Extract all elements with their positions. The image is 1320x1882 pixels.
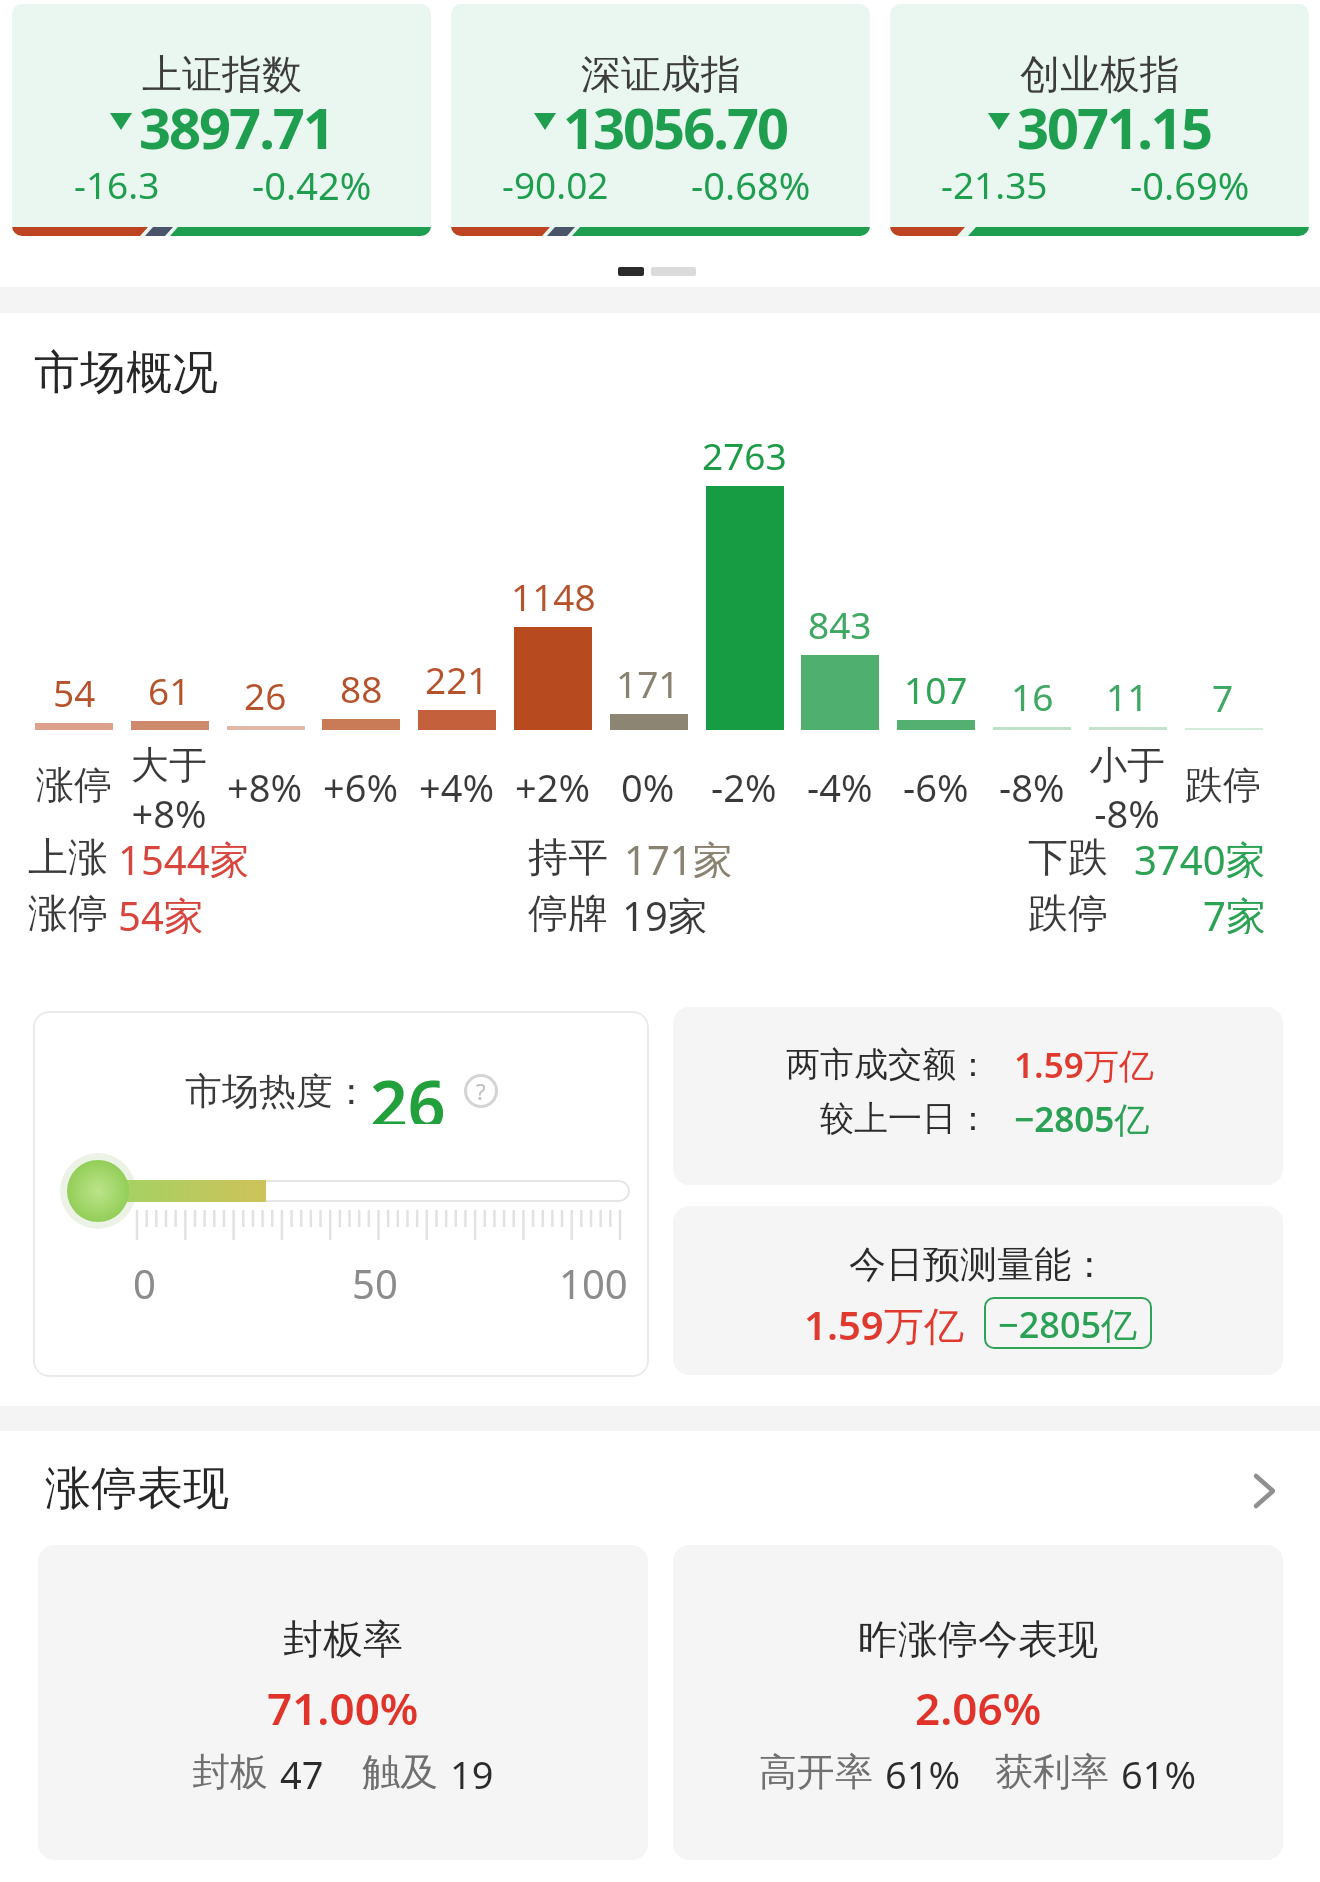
staticText: 市场概况 [34, 344, 218, 398]
staticText: 50 [352, 1256, 398, 1302]
staticText: +2% [515, 761, 591, 805]
staticText: -6% [903, 761, 969, 805]
button[interactable] [1248, 1470, 1284, 1512]
staticText: -4% [807, 761, 873, 805]
staticText: 获利率 [995, 1748, 1109, 1796]
staticText: 54 [53, 667, 96, 715]
staticText: 19家 [622, 888, 708, 934]
staticText: 跌停 [1185, 761, 1261, 805]
staticText: 深证成指 [581, 49, 741, 99]
staticText: 7 [1212, 672, 1234, 720]
staticText: 3897.71 [139, 89, 333, 153]
staticText: 0 [133, 1256, 156, 1302]
staticText: 1544家 [118, 832, 250, 878]
staticText: +8% [227, 761, 303, 805]
staticText: 221 [425, 654, 489, 702]
staticText: 54家 [118, 888, 204, 934]
staticText: 封板 [192, 1748, 268, 1796]
staticText: 封板率 [283, 1614, 403, 1662]
button[interactable]: 上证指数 [12, 4, 431, 236]
button[interactable] [33, 1011, 649, 1377]
button[interactable]: 深证成指 [451, 4, 870, 236]
staticText: 两市成交额： [786, 1043, 990, 1086]
staticText: 11 [1106, 671, 1149, 719]
staticText: 61% [1121, 1748, 1197, 1796]
staticText: 创业板指 [1020, 49, 1180, 99]
staticText: 19 [450, 1748, 494, 1796]
staticText: +6% [323, 761, 399, 805]
staticText: 88 [340, 663, 383, 711]
staticText: 1.59万亿 [1014, 1041, 1154, 1087]
staticText: 下跌 [1028, 832, 1108, 878]
staticText: -21.35 [941, 159, 1048, 207]
staticText: 涨停 [28, 888, 108, 934]
staticText: 26 [370, 1058, 446, 1124]
staticText: 3071.15 [1017, 89, 1211, 153]
button[interactable] [673, 1007, 1283, 1185]
staticText: -0.42% [252, 159, 372, 207]
button[interactable] [38, 1545, 648, 1860]
staticText: 1148 [511, 571, 596, 619]
staticText: 171家 [624, 832, 733, 878]
staticText: -16.3 [74, 159, 160, 207]
button[interactable] [673, 1206, 1283, 1375]
staticText: 涨停表现 [45, 1460, 229, 1514]
staticText: 触及 [362, 1748, 438, 1796]
staticText: -0.68% [691, 159, 811, 207]
staticText: 高开率 [759, 1748, 873, 1796]
staticText: ? [476, 1076, 486, 1106]
staticText: 小于 -8% [1089, 741, 1165, 833]
staticText: 较上一日： [820, 1097, 990, 1140]
staticText: 涨停 [36, 761, 112, 805]
staticText: -90.02 [502, 159, 609, 207]
button[interactable]: 创业板指 [890, 4, 1309, 236]
staticText: +4% [419, 761, 495, 805]
staticText: 0% [621, 761, 675, 805]
staticText: 16 [1011, 671, 1054, 719]
staticText: 市场热度： [185, 1068, 370, 1115]
staticText: 26 [244, 670, 287, 718]
staticText: −2805亿 [998, 1300, 1138, 1346]
staticText: 今日预测量能： [849, 1241, 1108, 1288]
staticText: 47 [280, 1748, 324, 1796]
staticText: 13056.70 [563, 89, 787, 153]
staticText: 107 [904, 664, 968, 712]
staticText: -2% [711, 761, 777, 805]
staticText: 171 [616, 658, 680, 706]
staticText: -8% [999, 761, 1065, 805]
button[interactable] [673, 1545, 1283, 1860]
staticText: 843 [808, 599, 872, 647]
staticText: 持平 [528, 832, 608, 878]
staticText: 昨涨停今表现 [858, 1614, 1098, 1662]
staticText: 61 [148, 665, 191, 713]
staticText: 跌停 [1028, 888, 1108, 934]
staticText: 上证指数 [142, 49, 302, 99]
staticText: 2.06% [915, 1678, 1042, 1728]
staticText: -0.69% [1130, 159, 1250, 207]
staticText: 71.00% [267, 1678, 419, 1728]
staticText: 停牌 [528, 888, 608, 934]
staticText: 61% [885, 1748, 961, 1796]
staticText: −2805亿 [1014, 1095, 1150, 1141]
staticText: 7家 [1203, 888, 1266, 934]
staticText: 上涨 [28, 832, 108, 878]
staticText: 3740家 [1134, 832, 1266, 878]
staticText: 1.59万亿 [804, 1297, 964, 1349]
staticText: 100 [559, 1256, 628, 1302]
staticText: 2763 [702, 430, 787, 478]
staticText: 大于 +8% [131, 741, 207, 833]
